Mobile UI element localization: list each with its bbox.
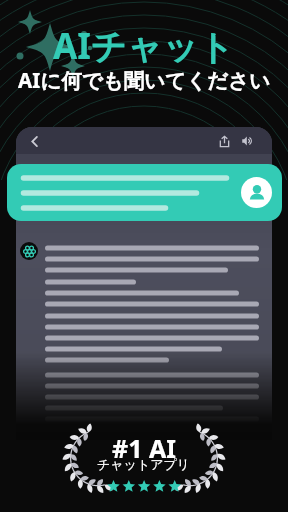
staticText: AIチャット — [53, 22, 235, 70]
staticText: チャットアプリ — [97, 456, 191, 472]
staticText: AIに何でも聞いてください — [18, 66, 270, 94]
button[interactable]: Share — [214, 131, 234, 151]
staticText: #1 AI — [112, 431, 176, 465]
button[interactable] — [7, 164, 282, 221]
button[interactable]: Volume — [238, 131, 258, 151]
button[interactable]: Back — [24, 131, 44, 151]
